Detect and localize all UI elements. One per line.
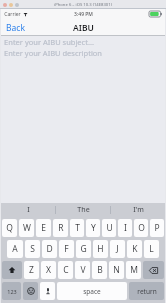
- staticText: space: [83, 287, 101, 296]
- staticText: Back: [6, 22, 25, 34]
- staticText: 123: [7, 288, 17, 295]
- button[interactable]: I: [1, 203, 55, 217]
- staticText: T: [75, 222, 80, 234]
- button[interactable]: B: [92, 261, 107, 279]
- staticText: return: [137, 287, 157, 296]
- button[interactable]: Q: [2, 219, 17, 237]
- button[interactable]: 123: [2, 282, 21, 300]
- button[interactable]: O: [134, 219, 148, 237]
- staticText: U: [106, 222, 113, 234]
- staticText: The: [77, 205, 90, 215]
- button[interactable]: The: [56, 203, 110, 217]
- staticText: N: [113, 264, 120, 276]
- staticText: Q: [6, 222, 13, 234]
- staticText: F: [64, 243, 69, 255]
- button[interactable]: E: [36, 219, 51, 237]
- staticText: G: [80, 243, 87, 255]
- button[interactable]: I: [118, 219, 132, 237]
- staticText: AIBU: [73, 22, 94, 34]
- button[interactable]: N: [109, 261, 124, 279]
- staticText: I: [27, 205, 30, 215]
- button[interactable]: J: [110, 240, 125, 258]
- staticText: R: [58, 222, 64, 234]
- staticText: P: [154, 222, 160, 234]
- staticText: Enter your AIBU description: [4, 48, 102, 58]
- staticText: L: [149, 243, 154, 255]
- staticText: V: [80, 264, 86, 276]
- staticText: C: [63, 264, 69, 276]
- staticText: K: [132, 243, 138, 255]
- button[interactable]: Enter your AIBU description: [1, 47, 165, 58]
- staticText: I: [124, 222, 127, 234]
- button[interactable]: Enter your AIBU subject...: [1, 36, 165, 47]
- staticText: Z: [29, 264, 34, 276]
- staticText: D: [46, 243, 53, 255]
- staticText: J: [116, 243, 119, 255]
- button[interactable]: P: [150, 219, 164, 237]
- button[interactable]: Backspace: [143, 261, 164, 279]
- button[interactable]: V: [75, 261, 90, 279]
- button[interactable]: H: [93, 240, 108, 258]
- button[interactable]: Y: [86, 219, 100, 237]
- staticText: Y: [91, 222, 96, 234]
- button[interactable]: I'm: [111, 203, 165, 217]
- staticText: 3:49 PM: [74, 11, 93, 18]
- staticText: H: [97, 243, 104, 255]
- button[interactable]: Emoji: [23, 282, 38, 300]
- staticText: I'm: [133, 205, 144, 215]
- staticText: B: [97, 264, 103, 276]
- button[interactable]: C: [58, 261, 73, 279]
- button[interactable]: Back: [1, 19, 30, 36]
- staticText: Carrier: [4, 11, 21, 18]
- button[interactable]: K: [127, 240, 142, 258]
- button[interactable]: T: [70, 219, 84, 237]
- staticText: W: [23, 222, 31, 234]
- staticText: S: [30, 243, 35, 255]
- staticText: M: [130, 264, 138, 276]
- button[interactable]: Z: [24, 261, 39, 279]
- staticText: A: [12, 243, 18, 255]
- button[interactable]: L: [144, 240, 159, 258]
- button[interactable]: M: [126, 261, 141, 279]
- staticText: iPhone 6 – iOS 10.3 (14E8301): [54, 2, 112, 8]
- staticText: O: [138, 222, 145, 234]
- button[interactable]: W: [19, 219, 34, 237]
- staticText: X: [46, 264, 51, 276]
- button[interactable]: U: [102, 219, 116, 237]
- button[interactable]: Dictation: [40, 282, 55, 300]
- button[interactable]: S: [25, 240, 40, 258]
- staticText: E: [41, 222, 46, 234]
- button[interactable]: space: [57, 282, 127, 300]
- button[interactable]: R: [53, 219, 68, 237]
- button[interactable]: X: [41, 261, 56, 279]
- staticText: Enter your AIBU subject...: [4, 37, 94, 47]
- button[interactable]: A: [7, 240, 23, 258]
- button[interactable]: F: [59, 240, 74, 258]
- button[interactable]: D: [42, 240, 57, 258]
- button[interactable]: G: [76, 240, 91, 258]
- button[interactable]: return: [129, 282, 164, 300]
- button[interactable]: Shift: [2, 261, 22, 279]
